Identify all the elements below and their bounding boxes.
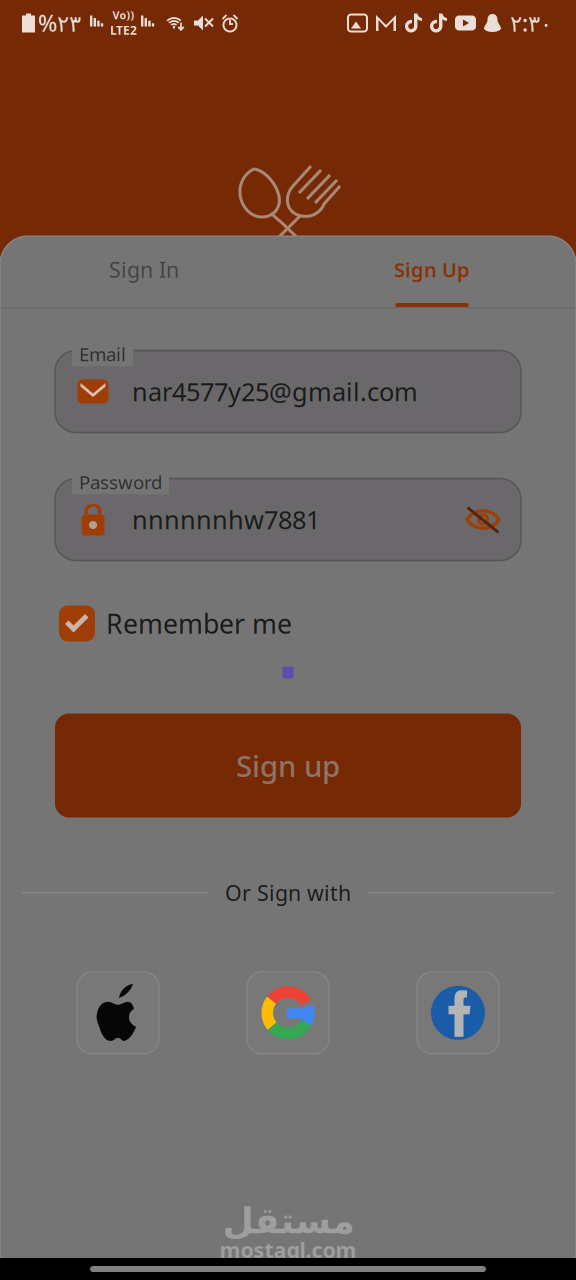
staticText: nar4577y25@gmail.com [132, 375, 418, 408]
staticText: LTE2 [110, 22, 137, 38]
staticText: Remember me [106, 606, 292, 641]
button[interactable]: Sign up [55, 713, 521, 817]
staticText: nnnnnnhw7881 [132, 503, 320, 536]
button[interactable]: Remember me [0, 605, 576, 641]
staticText: Sign up [236, 746, 340, 785]
staticText: ٢:٣٠ [510, 8, 552, 38]
staticText: Or Sign with [225, 878, 351, 907]
button[interactable]: Sign In [0, 236, 288, 307]
staticText: Vo)) [112, 8, 134, 22]
button[interactable]: Sign in with Google [247, 972, 329, 1054]
staticText: Sign In [109, 255, 179, 284]
staticText: mostaql.com [219, 1236, 356, 1264]
button[interactable]: Sign in with Apple [77, 972, 159, 1054]
button[interactable]: Sign in with Facebook [417, 972, 499, 1054]
staticText: %٢٣ [38, 8, 81, 38]
staticText: Email [79, 341, 126, 366]
staticText: Sign Up [394, 256, 470, 283]
staticText: مستقل [222, 1200, 354, 1241]
button[interactable]: nar4577y25@gmail.com [55, 350, 521, 432]
button[interactable]: nnnnnnhw7881 [55, 478, 521, 560]
staticText: Password [79, 469, 162, 494]
button[interactable]: Sign Up [288, 236, 576, 307]
